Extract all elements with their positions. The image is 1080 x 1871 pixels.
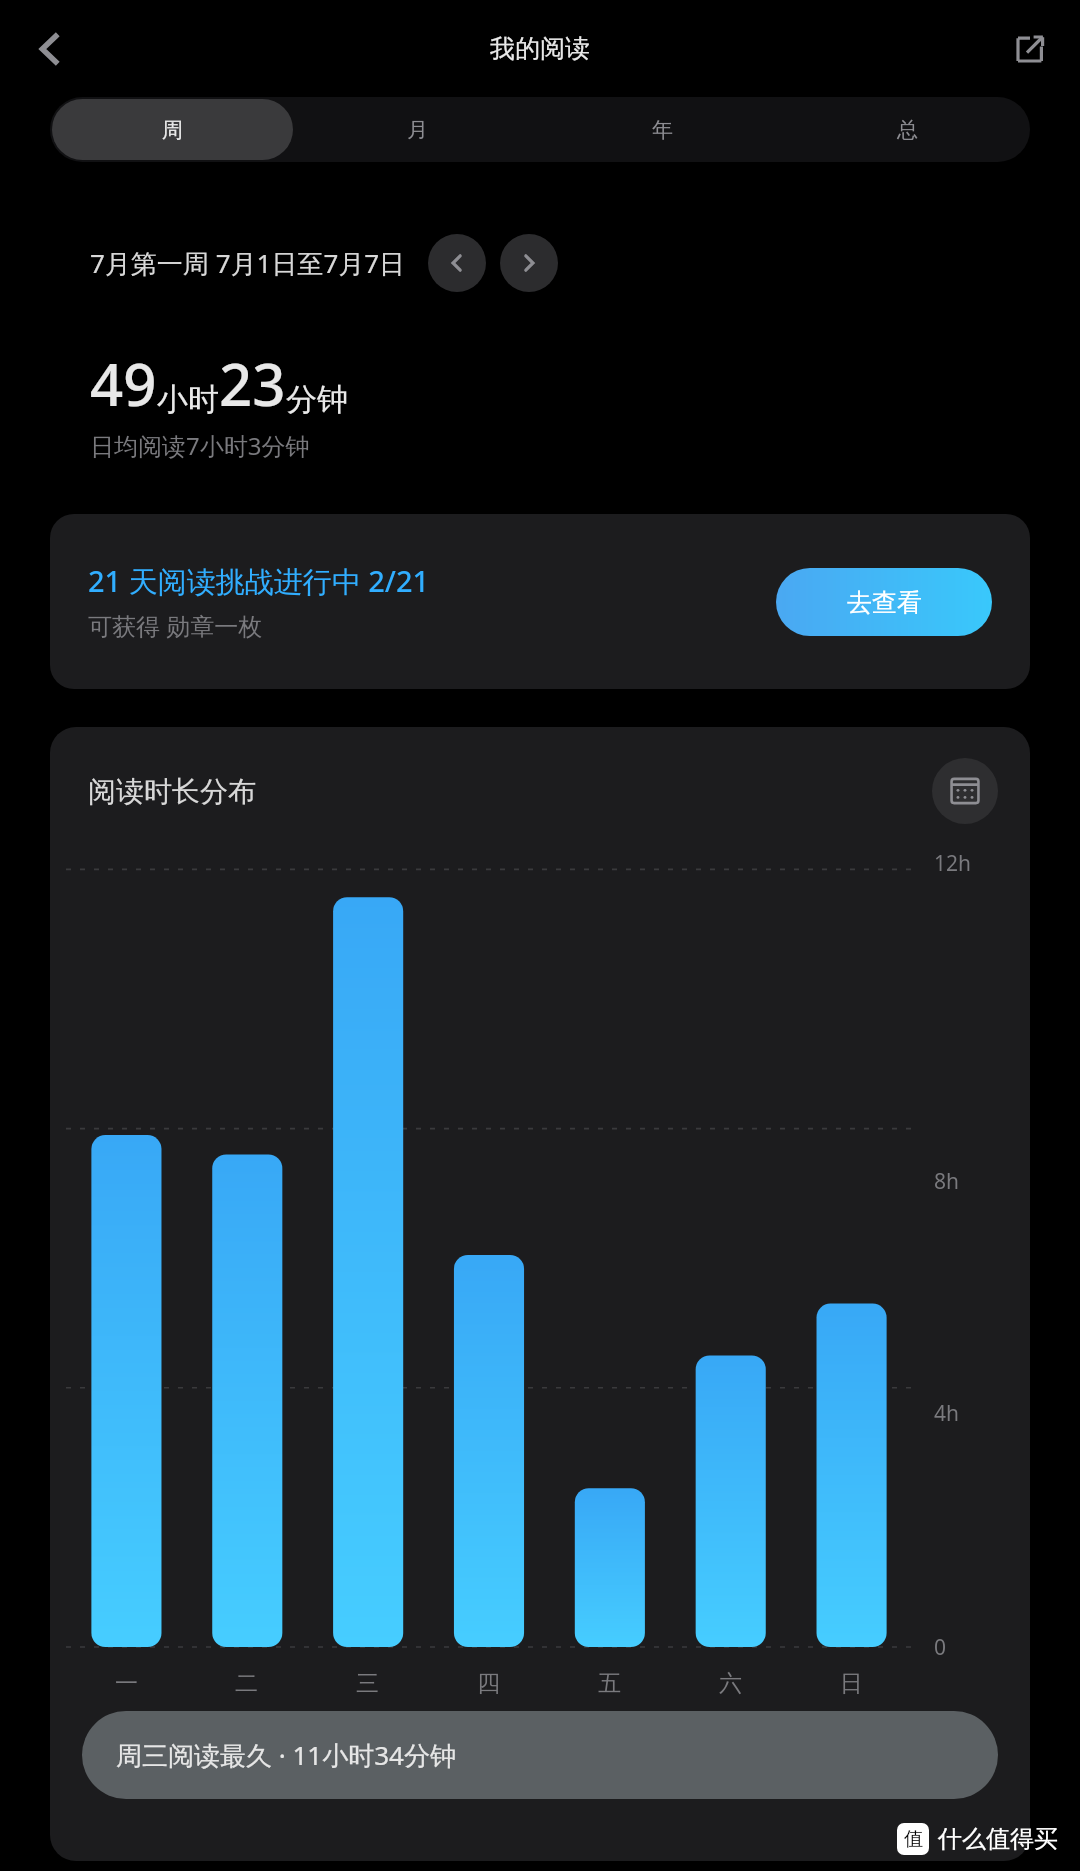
staticText: 23 [219,344,286,423]
button[interactable]: Back [14,13,86,85]
staticText: 年 [652,117,673,143]
staticText: 去查看 [847,587,922,618]
button[interactable]: Calendar [932,758,998,824]
staticText: 可获得 勋章一枚 [88,609,263,642]
button[interactable]: 年 [542,99,783,160]
staticText: 小时 [157,380,219,419]
staticText: 四 [477,1669,500,1698]
button[interactable]: 21 天阅读挑战进行中 2/21 [50,514,1030,689]
button[interactable]: 去查看 [776,568,992,636]
button[interactable]: Share [994,13,1066,85]
staticText: 12h [934,849,972,878]
staticText: 一 [115,1669,138,1698]
staticText: 分钟 [286,380,348,419]
button[interactable]: Next week [500,234,558,292]
staticText: 日均阅读7小时3分钟 [90,429,310,462]
staticText: 总 [897,117,918,143]
staticText: 4h [934,1399,959,1428]
staticText: 三 [356,1669,379,1698]
staticText: 阅读时长分布 [88,774,256,809]
staticText: 二 [235,1669,258,1698]
staticText: 值 [904,1827,923,1851]
button[interactable]: 总 [787,99,1028,160]
button[interactable]: 周三阅读最久 · 11小时34分钟 [82,1711,998,1799]
staticText: 0 [934,1633,947,1662]
staticText: 五 [598,1669,621,1698]
staticText: 月 [407,117,428,143]
staticText: 49 [90,344,157,423]
staticText: 7月第一周 7月1日至7月7日 [90,245,406,281]
staticText: 六 [719,1669,742,1698]
button[interactable]: Previous week [428,234,486,292]
staticText: 8h [934,1167,959,1196]
staticText: 我的阅读 [490,33,590,64]
staticText: 周 [162,117,183,143]
button[interactable]: 月 [297,99,538,160]
staticText: 什么值得买 [938,1824,1058,1854]
button[interactable]: 周 [52,99,293,160]
staticText: 21 天阅读挑战进行中 2/21 [88,561,430,601]
staticText: 周三阅读最久 · 11小时34分钟 [116,1737,456,1773]
staticText: 日 [840,1669,863,1698]
